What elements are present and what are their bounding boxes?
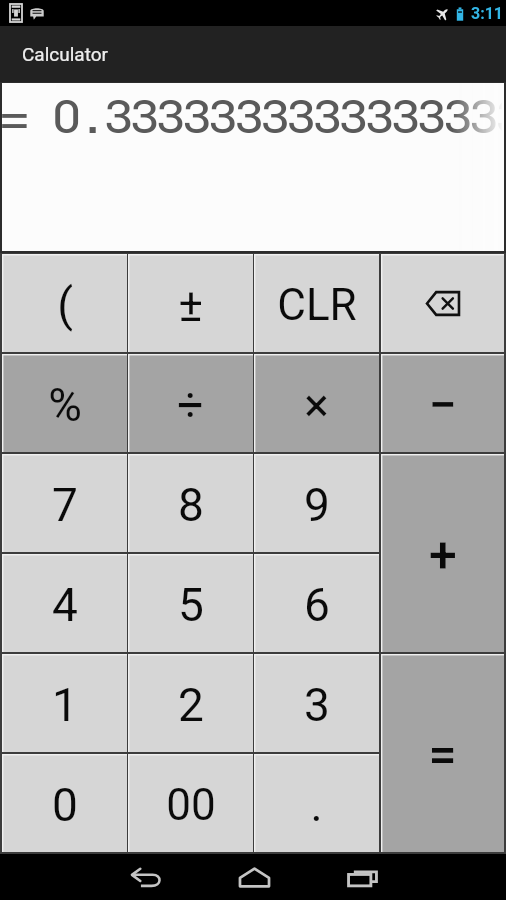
staticText: = <box>428 726 457 785</box>
button[interactable]: 2 <box>128 654 253 752</box>
staticText: = 0.3333333333333333 <box>2 88 502 145</box>
staticText: 00 <box>166 779 216 831</box>
button[interactable]: 3 <box>254 654 379 752</box>
button[interactable]: . <box>254 754 379 852</box>
button[interactable]: × <box>254 354 379 452</box>
button[interactable]: CLR <box>254 254 379 352</box>
button[interactable]: Home <box>200 854 308 900</box>
button[interactable]: Calculator <box>0 26 506 82</box>
staticText: ÷ <box>177 378 204 432</box>
staticText: + <box>429 526 457 585</box>
staticText: − <box>428 376 457 435</box>
button[interactable]: ÷ <box>128 354 253 452</box>
staticText: 1 <box>52 678 78 732</box>
button[interactable]: 9 <box>254 454 379 552</box>
button[interactable]: 5 <box>128 554 253 652</box>
staticText: 0 <box>52 778 78 832</box>
staticText: % <box>48 378 82 432</box>
staticText: Calculator <box>22 43 109 65</box>
button[interactable]: Backspace <box>381 254 504 352</box>
button[interactable]: 00 <box>128 754 253 852</box>
staticText: × <box>304 378 329 432</box>
button[interactable]: Back <box>92 854 200 900</box>
staticText: 6 <box>304 578 330 632</box>
staticText: CLR <box>277 279 357 331</box>
staticText: 8 <box>178 478 204 532</box>
staticText: 7 <box>52 478 78 532</box>
button[interactable]: 4 <box>2 554 127 652</box>
button[interactable]: 0 <box>2 754 127 852</box>
button[interactable]: 7 <box>2 454 127 552</box>
button[interactable]: − <box>381 354 504 452</box>
staticText: 4 <box>52 578 78 632</box>
staticText: 2 <box>178 678 204 732</box>
staticText: ( <box>57 278 73 332</box>
button[interactable]: = <box>381 654 504 852</box>
button[interactable]: % <box>2 354 127 452</box>
staticText: 3:11 <box>471 4 504 23</box>
staticText: . <box>310 778 323 832</box>
button[interactable]: + <box>381 454 504 652</box>
button[interactable]: 6 <box>254 554 379 652</box>
button[interactable]: 8 <box>128 454 253 552</box>
staticText: 3 <box>304 678 330 732</box>
button[interactable]: ( <box>2 254 127 352</box>
staticText: 9 <box>304 478 330 532</box>
button[interactable]: Recent apps <box>308 854 416 900</box>
staticText: 5 <box>178 578 204 632</box>
button[interactable]: ± <box>128 254 253 352</box>
staticText: ± <box>178 278 203 332</box>
button[interactable]: 1 <box>2 654 127 752</box>
